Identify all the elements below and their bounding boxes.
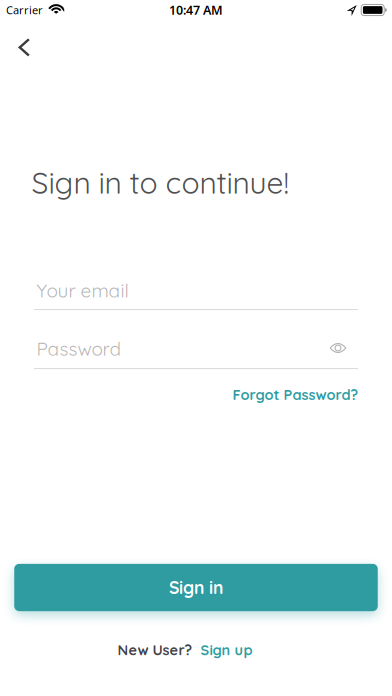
staticText: Carrier [6, 2, 43, 17]
button[interactable]: Sign up [200, 641, 252, 659]
button[interactable]: Sign in [14, 564, 378, 611]
button[interactable]: Forgot Password? [232, 386, 358, 404]
button[interactable]: Show password [316, 326, 360, 370]
staticText: Sign up [200, 641, 252, 659]
staticText: 10:47 AM [169, 1, 223, 18]
staticText: Sign in [169, 577, 223, 598]
staticText: New User? [117, 641, 192, 659]
staticText: Password [36, 337, 121, 360]
button[interactable]: Back [2, 25, 46, 69]
staticText: Forgot Password? [232, 386, 358, 404]
staticText: Your email [36, 278, 128, 302]
staticText: Sign in to continue! [31, 164, 289, 201]
